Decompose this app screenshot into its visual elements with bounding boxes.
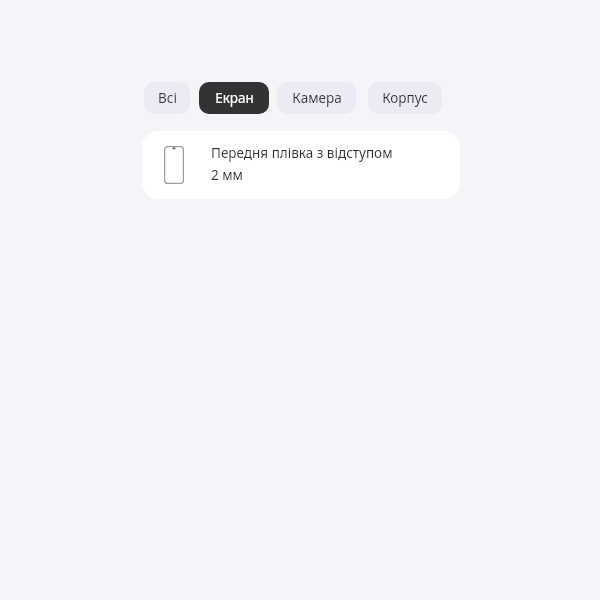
staticText: Передня плівка з відступом: [211, 144, 393, 162]
button[interactable]: Камера: [277, 82, 356, 114]
button[interactable]: Всі: [144, 82, 190, 114]
button[interactable]: Корпус: [368, 82, 442, 114]
button[interactable]: Передня плівка з відступом: [142, 131, 460, 199]
button[interactable]: Екран: [199, 82, 269, 114]
staticText: Корпус: [382, 89, 428, 107]
staticText: Камера: [292, 89, 342, 107]
staticText: Екран: [215, 89, 254, 107]
staticText: 2 мм: [211, 166, 243, 184]
staticText: Всі: [158, 89, 177, 107]
